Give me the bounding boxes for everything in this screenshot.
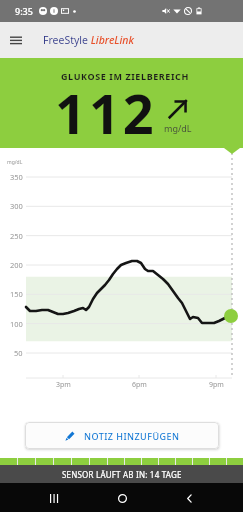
staticText: mg/dL xyxy=(7,159,23,166)
staticText: 9:35 xyxy=(15,5,33,17)
staticText: 100 xyxy=(10,319,23,329)
button[interactable]: Back xyxy=(175,484,203,512)
button[interactable]: Recents xyxy=(40,484,68,512)
button[interactable]: Home xyxy=(108,484,136,512)
staticText: 150 xyxy=(10,289,23,299)
staticText: FreeStyle xyxy=(43,33,88,47)
button[interactable]: Menu xyxy=(3,27,29,53)
button[interactable]: NOTIZ HINZUFÜGEN xyxy=(25,422,219,449)
staticText: 300 xyxy=(10,201,23,211)
staticText: 6pm xyxy=(132,380,147,390)
staticText: mg/dL xyxy=(164,122,192,134)
staticText: 3pm xyxy=(56,380,71,390)
staticText: LibreLink xyxy=(88,33,134,47)
staticText: 112 xyxy=(55,76,157,150)
staticText: 250 xyxy=(10,231,23,241)
staticText: 9pm xyxy=(209,380,224,390)
staticText: 350 xyxy=(10,172,23,182)
staticText: 50 xyxy=(14,348,23,358)
staticText: GLUKOSE IM ZIELBEREICH xyxy=(61,70,189,82)
staticText: NOTIZ HINZUFÜGEN xyxy=(84,430,180,442)
staticText: SENSOR LÄUFT AB IN: 14 TAGE xyxy=(62,469,182,480)
staticText: 200 xyxy=(10,260,23,270)
